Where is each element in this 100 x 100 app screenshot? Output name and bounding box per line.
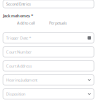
staticText: Court Number	[6, 49, 32, 54]
staticText: Add to call	[17, 20, 35, 26]
staticText: Trigger Date *	[6, 35, 31, 40]
button[interactable]: Trigger Date *	[3, 33, 94, 43]
staticText: Disposition	[6, 91, 25, 96]
staticText: Perpetuals	[49, 20, 67, 26]
button[interactable]: Court Address	[3, 61, 94, 71]
button[interactable]: Court Number	[3, 47, 94, 57]
staticText: Court Address	[6, 63, 32, 68]
staticText: Jack mahomes *	[3, 13, 33, 18]
staticText: Second Entries	[6, 1, 31, 7]
staticText: Hearing Judgment	[6, 77, 37, 82]
button[interactable]: Disposition	[3, 89, 94, 99]
button[interactable]: Hearing Judgment	[3, 75, 94, 85]
